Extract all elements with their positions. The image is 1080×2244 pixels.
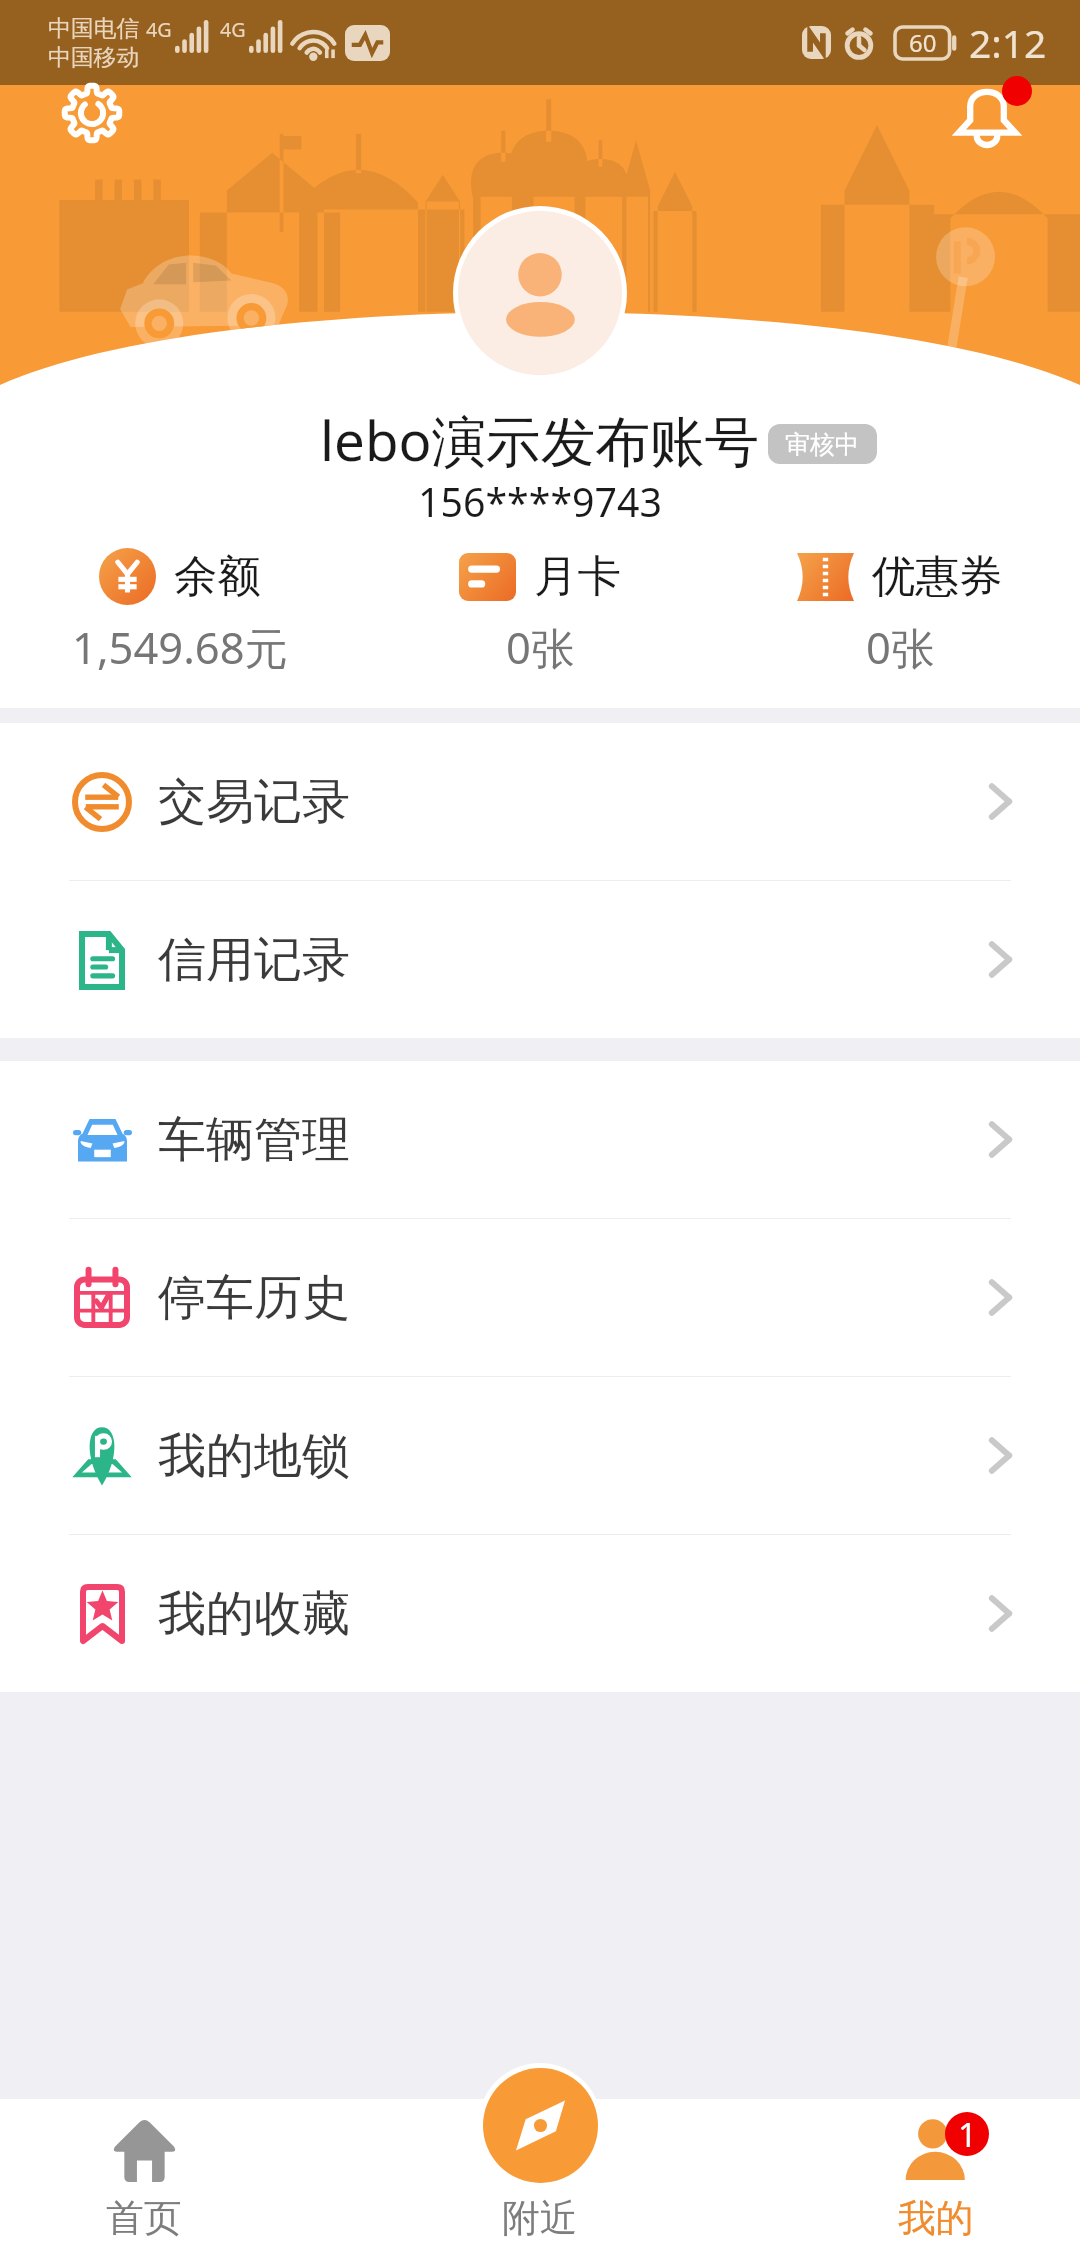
button[interactable]: 头像 — [453, 206, 627, 380]
button[interactable]: 优惠券 — [720, 542, 1080, 676]
staticText: 中国移动 — [48, 43, 140, 72]
staticText: 1,549.68元 — [72, 617, 289, 676]
button[interactable]: 附近 — [435, 2068, 645, 2244]
button[interactable]: 信用记录 — [0, 881, 1080, 1038]
staticText: 1 — [958, 2112, 977, 2156]
button[interactable]: 设置 — [44, 65, 140, 161]
staticText: 车辆管理 — [158, 1110, 350, 1170]
staticText: 0张 — [506, 617, 575, 676]
staticText: 我的地锁 — [158, 1426, 350, 1486]
button[interactable]: 我的地锁 — [0, 1377, 1080, 1534]
staticText: 附近 — [502, 2195, 578, 2243]
staticText: 4G — [220, 16, 246, 43]
staticText: 2:12 — [969, 16, 1047, 69]
other: 附近 — [483, 2068, 598, 2183]
staticText: 月卡 — [534, 549, 621, 604]
staticText: 信用记录 — [158, 930, 350, 990]
staticText: 156****9743 — [418, 475, 662, 529]
staticText: 4G — [146, 16, 172, 43]
staticText: 0张 — [866, 617, 935, 676]
button[interactable]: 首页 — [60, 2099, 228, 2244]
staticText: 60 — [909, 26, 937, 59]
button[interactable]: 停车历史 — [0, 1219, 1080, 1376]
button[interactable]: 交易记录 — [0, 723, 1080, 880]
staticText: 余额 — [174, 549, 261, 604]
staticText: 优惠券 — [872, 549, 1003, 604]
staticText: lebo演示发布账号 — [320, 403, 760, 478]
staticText: 首页 — [106, 2195, 182, 2243]
staticText: 中国电信 — [48, 14, 140, 43]
button[interactable]: 1 — [852, 2099, 1020, 2244]
staticText: 审核中 — [785, 429, 860, 460]
staticText: 交易记录 — [158, 772, 350, 832]
button[interactable]: 车辆管理 — [0, 1061, 1080, 1218]
button[interactable]: 我的收藏 — [0, 1535, 1080, 1692]
button[interactable]: 余额 — [0, 542, 360, 676]
button[interactable]: 月卡 — [360, 542, 720, 676]
staticText: 我的收藏 — [158, 1584, 350, 1644]
staticText: 我的 — [898, 2195, 974, 2243]
button[interactable]: 通知 — [939, 67, 1035, 163]
staticText: 停车历史 — [158, 1268, 350, 1328]
